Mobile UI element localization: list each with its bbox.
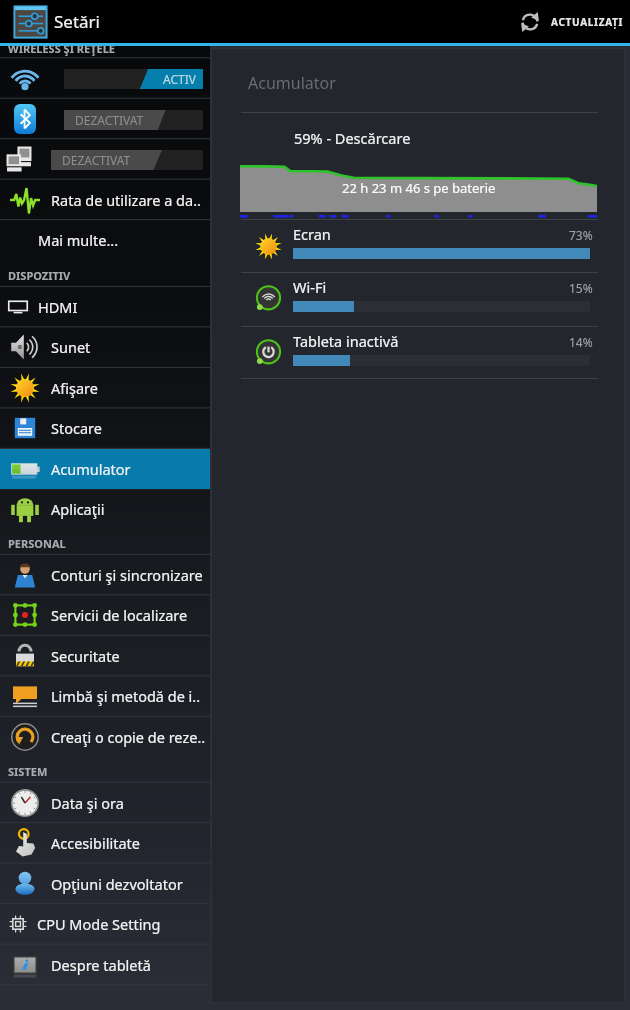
button[interactable]: Actualizați <box>506 0 630 43</box>
staticText: 15% <box>569 280 593 296</box>
staticText: Ecran <box>293 224 331 244</box>
button[interactable]: Opţiuni dezvoltator <box>0 864 210 904</box>
staticText: Servicii de localizare <box>51 605 188 625</box>
staticText: Acumulator <box>51 459 131 479</box>
staticText: Rata de utilizare a da.. <box>51 190 201 210</box>
button[interactable]: HDMI <box>0 287 210 327</box>
staticText: Creaţi o copie de reze.. <box>51 727 206 747</box>
button[interactable]: DEZACTIVAT <box>0 139 210 179</box>
staticText: Stocare <box>51 418 102 438</box>
button[interactable]: Despre tabletă <box>0 945 210 985</box>
other: Actualizați <box>520 12 540 32</box>
button[interactable]: Rata de utilizare a da.. <box>0 180 210 220</box>
staticText: 22 h 23 m 46 s pe baterie <box>342 179 496 197</box>
button[interactable]: Aplicaţii <box>0 489 210 529</box>
staticText: Accesibilitate <box>51 833 140 853</box>
staticText: 14% <box>569 334 593 350</box>
staticText: 73% <box>569 227 593 243</box>
staticText: Tableta inactivă <box>293 331 399 351</box>
staticText: DEZACTIVAT <box>62 152 131 168</box>
staticText: Sunet <box>51 337 91 357</box>
staticText: 59% - Descărcare <box>294 128 411 148</box>
staticText: Securitate <box>51 646 120 666</box>
staticText: Opţiuni dezvoltator <box>51 874 183 894</box>
button[interactable]: Conturi şi sincronizare <box>0 555 210 595</box>
staticText: DEZACTIVAT <box>75 112 144 128</box>
staticText: Limbă şi metodă de i.. <box>51 686 201 706</box>
button[interactable]: Creaţi o copie de reze.. <box>0 717 210 757</box>
staticText: ACTUALIZAȚI <box>551 15 624 29</box>
staticText: Despre tabletă <box>51 955 151 975</box>
button[interactable]: Securitate <box>0 636 210 676</box>
button[interactable]: CPU Mode Setting <box>0 904 210 944</box>
staticText: Data şi ora <box>51 793 124 813</box>
staticText: Wi-Fi <box>293 277 327 297</box>
button[interactable]: ACTIV <box>0 58 210 98</box>
button[interactable]: Wi-Fi <box>212 273 624 325</box>
button[interactable]: Acumulator <box>0 449 210 489</box>
button[interactable]: Sunet <box>0 327 210 367</box>
staticText: ACTIV <box>163 71 196 87</box>
staticText: Mai multe... <box>38 230 119 250</box>
button[interactable]: Accesibilitate <box>0 823 210 863</box>
button[interactable]: Afişare <box>0 368 210 408</box>
staticText: Conturi şi sincronizare <box>51 565 203 585</box>
button[interactable]: Mai multe... <box>0 220 210 260</box>
staticText: Afişare <box>51 378 98 398</box>
button[interactable]: Ecran <box>212 220 624 272</box>
button[interactable]: Limbă şi metodă de i.. <box>0 676 210 716</box>
staticText: Aplicaţii <box>51 499 105 519</box>
staticText: HDMI <box>38 297 78 317</box>
staticText: SISTEM <box>8 764 48 776</box>
button[interactable]: DEZACTIVAT <box>0 99 210 139</box>
staticText: DISPOZITIV <box>8 268 71 280</box>
staticText: Setări <box>54 10 101 33</box>
button[interactable]: Stocare <box>0 408 210 448</box>
staticText: Acumulator <box>248 72 336 94</box>
button[interactable]: Servicii de localizare <box>0 595 210 635</box>
staticText: WIRELESS ŞI REŢELE <box>8 41 115 56</box>
staticText: PERSONAL <box>8 536 66 548</box>
button[interactable]: Data şi ora <box>0 783 210 823</box>
button[interactable]: Tableta inactivă <box>212 327 624 379</box>
staticText: CPU Mode Setting <box>37 914 161 934</box>
